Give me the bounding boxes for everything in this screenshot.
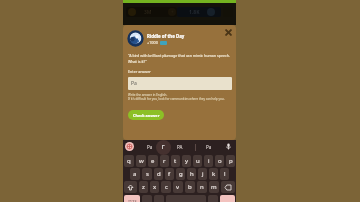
button[interactable]: Emoji	[142, 195, 152, 202]
button[interactable]: Period	[208, 195, 218, 202]
button[interactable]: Г	[156, 140, 171, 155]
button[interactable]: Shift	[124, 181, 137, 193]
staticText: Riddle of the Day	[147, 33, 185, 39]
button[interactable]: v	[173, 181, 183, 193]
staticText: Enter answer	[128, 69, 151, 74]
button[interactable]: w	[136, 155, 146, 167]
button[interactable]: PA	[177, 144, 183, 150]
staticText: "A bird with brilliant plumage that can …	[128, 53, 232, 64]
staticText: Г	[162, 144, 165, 151]
staticText: ?123	[128, 199, 137, 202]
button[interactable]: d	[154, 168, 163, 180]
button[interactable]: q	[124, 155, 134, 167]
button[interactable]: y	[182, 155, 191, 167]
staticText: Write the answer in English. If it's dif…	[128, 93, 225, 101]
button[interactable]: Pa	[147, 144, 153, 150]
button[interactable]: Comma	[154, 195, 164, 202]
button[interactable]: a	[130, 168, 140, 180]
staticText: a	[133, 170, 137, 178]
staticText: k	[212, 170, 216, 178]
staticText: f	[168, 170, 171, 178]
staticText: Pa	[131, 80, 137, 87]
staticText: u	[196, 157, 200, 165]
staticText: c	[165, 183, 168, 191]
staticText: 1.8K	[189, 9, 200, 16]
button[interactable]: u	[193, 155, 202, 167]
button[interactable]: t	[171, 155, 180, 167]
staticText: p	[229, 157, 233, 165]
staticText: e	[151, 157, 155, 165]
button[interactable]: f	[165, 168, 174, 180]
staticText: s	[146, 170, 149, 178]
staticText: z	[142, 183, 145, 191]
staticText: r	[163, 157, 166, 165]
button[interactable]: k	[209, 168, 218, 180]
button[interactable]: Coins	[126, 7, 177, 17]
button[interactable]: Enter	[220, 195, 235, 202]
staticText: h	[190, 170, 194, 178]
staticText: b	[188, 183, 192, 191]
button[interactable]: r	[160, 155, 169, 167]
staticText: o	[218, 157, 222, 165]
button[interactable]: o	[215, 155, 224, 167]
button[interactable]: e	[148, 155, 158, 167]
button[interactable]: z	[139, 181, 148, 193]
button[interactable]: n	[197, 181, 207, 193]
button[interactable]: Voice input	[224, 142, 233, 151]
button[interactable]: Check answer	[128, 110, 164, 120]
staticText: 3M	[144, 9, 152, 16]
staticText: t	[174, 157, 177, 165]
button[interactable]: j	[198, 168, 207, 180]
button[interactable]: ?123	[124, 195, 140, 202]
staticText: i	[208, 157, 210, 165]
staticText: x	[153, 183, 157, 191]
staticText: m	[211, 183, 217, 191]
button[interactable]: x	[150, 181, 159, 193]
button[interactable]: l	[220, 168, 229, 180]
button[interactable]: b	[185, 181, 195, 193]
staticText: Check answer	[133, 113, 160, 118]
staticText: w	[139, 157, 144, 165]
staticText: j	[202, 170, 204, 178]
button[interactable]: p	[226, 155, 235, 167]
button[interactable]: s	[142, 168, 152, 180]
staticText: l	[224, 170, 226, 178]
staticText: y	[185, 157, 189, 165]
button[interactable]: Gems	[177, 7, 221, 17]
button[interactable]: Close	[222, 26, 235, 39]
button[interactable]: Backspace	[221, 181, 235, 193]
button[interactable]: c	[161, 181, 171, 193]
staticText: d	[157, 170, 161, 178]
button[interactable]: Keyboard settings	[125, 142, 134, 151]
button[interactable]: Pa	[128, 77, 232, 90]
staticText: +1000	[147, 40, 158, 45]
button[interactable]: i	[204, 155, 213, 167]
staticText: g	[179, 170, 183, 178]
staticText: q	[127, 157, 131, 165]
button[interactable]: Pa	[206, 144, 212, 150]
staticText: n	[200, 183, 204, 191]
button[interactable]: g	[176, 168, 185, 180]
button[interactable]: h	[187, 168, 196, 180]
button[interactable]: m	[209, 181, 219, 193]
staticText: v	[176, 183, 180, 191]
